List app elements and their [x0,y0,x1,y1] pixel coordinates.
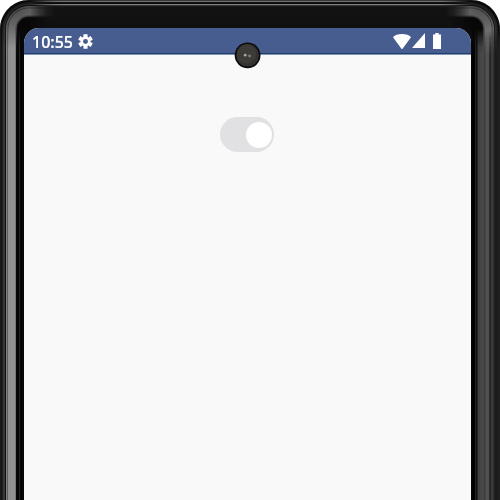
button[interactable]: Settings [78,34,93,49]
button[interactable]: Toggle [220,117,274,152]
staticText: 10:55 [32,31,73,53]
